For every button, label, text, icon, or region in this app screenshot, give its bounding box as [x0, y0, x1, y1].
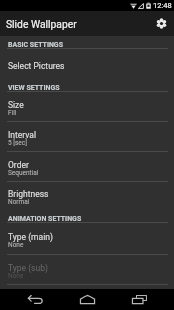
staticText: Type (sub) — [8, 263, 48, 273]
button[interactable]: Settings — [149, 11, 174, 36]
staticText: None — [8, 241, 24, 249]
staticText: VIEW SETTINGS — [8, 84, 60, 92]
button[interactable]: Brightness — [0, 182, 174, 210]
staticText: ANIMATION SETTINGS — [8, 215, 82, 223]
button[interactable]: Type (main) — [0, 223, 174, 255]
button[interactable]: Select Pictures — [0, 49, 174, 79]
staticText: 12:48 — [153, 1, 172, 10]
staticText: BASIC SETTINGS — [8, 41, 63, 49]
button[interactable]: Size — [0, 92, 174, 122]
staticText: Slide Wallpaper — [6, 18, 77, 30]
button[interactable]: Order — [0, 152, 174, 182]
button[interactable]: Recents — [113, 289, 165, 310]
button[interactable]: Interval — [0, 122, 174, 152]
staticText: Interval — [8, 130, 36, 140]
staticText: Type (main) — [8, 232, 53, 242]
staticText: 5 [sec] — [8, 139, 27, 147]
staticText: Size — [8, 100, 24, 110]
button[interactable]: Back — [9, 289, 61, 310]
staticText: Select Pictures — [8, 61, 65, 71]
staticText: Brightness — [8, 189, 49, 199]
button[interactable]: Type (sub) — [0, 255, 174, 285]
button[interactable]: Home — [61, 289, 113, 310]
staticText: None — [8, 272, 24, 280]
staticText: Fill — [8, 109, 17, 117]
staticText: Order — [8, 160, 29, 170]
staticText: Normal — [8, 198, 30, 206]
staticText: Sequential — [8, 169, 39, 177]
